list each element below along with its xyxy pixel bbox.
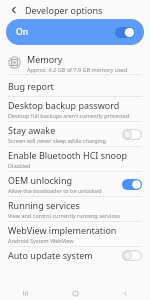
button[interactable]: Running services bbox=[0, 197, 150, 221]
button[interactable]: Enable Bluetooth HCI snoop log bbox=[0, 147, 150, 171]
staticText: OEM unlocking bbox=[8, 174, 72, 186]
button[interactable]: Auto update system bbox=[0, 247, 150, 263]
button[interactable]: Memory bbox=[0, 51, 150, 74]
staticText: Memory bbox=[27, 53, 63, 65]
staticText: WebView implementation bbox=[8, 224, 117, 236]
button[interactable]: Home bbox=[50, 286, 100, 300]
staticText: Auto update system bbox=[8, 249, 93, 261]
staticText: Desktop backup password bbox=[8, 99, 120, 111]
staticText: Running services bbox=[8, 199, 80, 211]
button[interactable]: Back bbox=[7, 3, 21, 17]
staticText: View and control currently running servi… bbox=[8, 212, 120, 219]
button[interactable]: OEM unlocking bbox=[0, 172, 150, 196]
button[interactable]: Desktop backup password bbox=[0, 97, 150, 121]
staticText: Developer options bbox=[25, 4, 103, 16]
staticText: Stay awake bbox=[8, 124, 56, 136]
staticText: Desktop full backups aren't currently pr… bbox=[8, 112, 130, 119]
staticText: On bbox=[16, 26, 28, 38]
button[interactable]: WebView implementation bbox=[0, 222, 150, 246]
button[interactable]: Stay awake bbox=[0, 122, 150, 146]
staticText: Disabled bbox=[8, 162, 31, 169]
staticText: Screen will never sleep while charging bbox=[8, 137, 106, 144]
button[interactable]: On bbox=[6, 19, 144, 45]
staticText: Android System WebView bbox=[8, 237, 74, 244]
button[interactable]: Recents bbox=[0, 286, 50, 300]
staticText: Allow the bootloader to be unlocked bbox=[8, 187, 102, 194]
staticText: Enable Bluetooth HCI snoop log bbox=[8, 149, 142, 161]
button[interactable]: Back bbox=[100, 286, 150, 300]
staticText: Approx. 4.2 GB of 7.9 GB memory used bbox=[27, 66, 128, 73]
staticText: Bug report bbox=[8, 80, 54, 92]
button[interactable]: Bug report bbox=[0, 75, 150, 96]
